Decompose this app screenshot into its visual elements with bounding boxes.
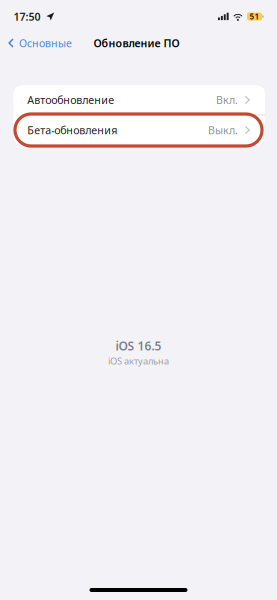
staticText: Выкл. [208,123,238,137]
staticText: Обновление ПО [93,36,179,50]
button[interactable]: Автообновление [13,85,265,115]
button[interactable]: Бета-обновления [13,115,265,145]
staticText: iOS 16.5 [115,338,161,354]
staticText: 51 [249,11,259,22]
staticText: Автообновление [27,93,114,107]
staticText: Основные [19,36,72,50]
staticText: 17:50 [13,9,40,24]
staticText: Бета-обновления [27,123,117,137]
staticText: iOS актуальна [108,355,169,367]
staticText: Вкл. [216,93,238,107]
button[interactable]: Основные [0,33,78,53]
